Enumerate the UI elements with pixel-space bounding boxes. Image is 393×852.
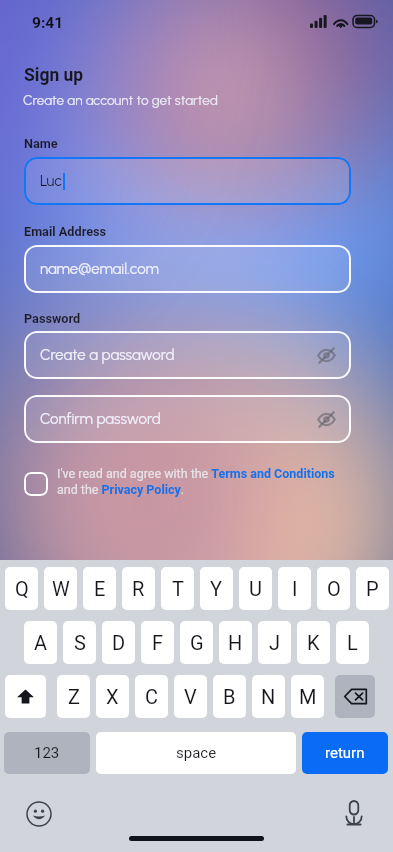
staticText: Password [24, 311, 81, 326]
staticText: L [347, 631, 358, 654]
button[interactable]: Luc [24, 157, 351, 205]
staticText: Q [15, 577, 29, 600]
button[interactable]: Backspace [335, 675, 375, 718]
staticText: G [190, 631, 204, 654]
staticText: Sign up [24, 65, 84, 86]
button[interactable]: Create a passaword [24, 331, 351, 379]
staticText: V [184, 685, 197, 708]
button[interactable]: L [336, 621, 369, 664]
button[interactable]: space [96, 732, 296, 774]
button[interactable]: Show password [317, 346, 336, 365]
staticText: H [228, 631, 243, 654]
staticText: R [132, 577, 145, 600]
button[interactable]: Z [57, 675, 90, 718]
button[interactable]: G [180, 621, 213, 664]
staticText: Create an account to get started [23, 92, 218, 108]
button[interactable]: Emoji keyboard [26, 801, 52, 827]
staticText: D [112, 631, 126, 654]
staticText: 9:41 [32, 14, 64, 32]
staticText: K [307, 631, 320, 654]
staticText: return [325, 744, 365, 762]
button[interactable]: Q [5, 567, 38, 610]
button[interactable]: Show password [317, 410, 336, 429]
staticText: W [52, 577, 70, 600]
staticText: Z [68, 685, 80, 708]
staticText: M [299, 685, 317, 708]
staticText: U [249, 577, 262, 600]
staticText: T [172, 577, 184, 600]
button[interactable]: W [44, 567, 77, 610]
staticText: F [152, 631, 164, 654]
button[interactable]: N [252, 675, 285, 718]
button[interactable]: E [83, 567, 116, 610]
button[interactable]: Voice dictation [343, 800, 365, 827]
button[interactable]: Agree to terms and conditions [24, 472, 48, 496]
button[interactable]: U [239, 567, 272, 610]
button[interactable]: X [96, 675, 129, 718]
staticText: Email Address [24, 224, 107, 239]
button[interactable]: name@email.com [24, 245, 351, 293]
staticText: X [106, 685, 119, 708]
staticText: Create a passaword [40, 346, 175, 364]
button[interactable]: K [297, 621, 330, 664]
button[interactable]: V [174, 675, 207, 718]
staticText: Confirm password [40, 410, 161, 428]
staticText: O [327, 577, 341, 600]
button[interactable]: C [135, 675, 168, 718]
staticText: J [269, 631, 281, 654]
button[interactable]: P [356, 567, 389, 610]
staticText: Name [24, 136, 58, 151]
button[interactable]: B [213, 675, 246, 718]
staticText: A [34, 631, 48, 654]
staticText: S [74, 631, 86, 654]
button[interactable]: R [122, 567, 155, 610]
button[interactable]: J [258, 621, 291, 664]
button[interactable]: Shift [5, 675, 46, 718]
staticText: Luc [40, 172, 62, 190]
staticText: P [366, 577, 379, 600]
staticText: 123 [34, 744, 60, 762]
button[interactable]: S [63, 621, 96, 664]
staticText: I've read and agree with the Terms and C… [57, 466, 357, 497]
staticText: N [261, 685, 276, 708]
button[interactable]: T [161, 567, 194, 610]
staticText: C [145, 685, 159, 708]
staticText: I [292, 577, 298, 600]
button[interactable]: Confirm password [24, 395, 351, 443]
button[interactable]: return [302, 732, 388, 774]
staticText: space [176, 744, 217, 762]
button[interactable]: A [24, 621, 57, 664]
button[interactable]: Y [200, 567, 233, 610]
staticText: Y [210, 577, 223, 600]
button[interactable]: M [291, 675, 324, 718]
button[interactable]: 123 [4, 732, 90, 774]
button[interactable]: O [317, 567, 350, 610]
staticText: E [94, 577, 106, 600]
button[interactable]: D [102, 621, 135, 664]
staticText: B [223, 685, 236, 708]
button[interactable]: I [278, 567, 311, 610]
staticText: name@email.com [40, 260, 159, 278]
button[interactable]: F [141, 621, 174, 664]
button[interactable]: H [219, 621, 252, 664]
